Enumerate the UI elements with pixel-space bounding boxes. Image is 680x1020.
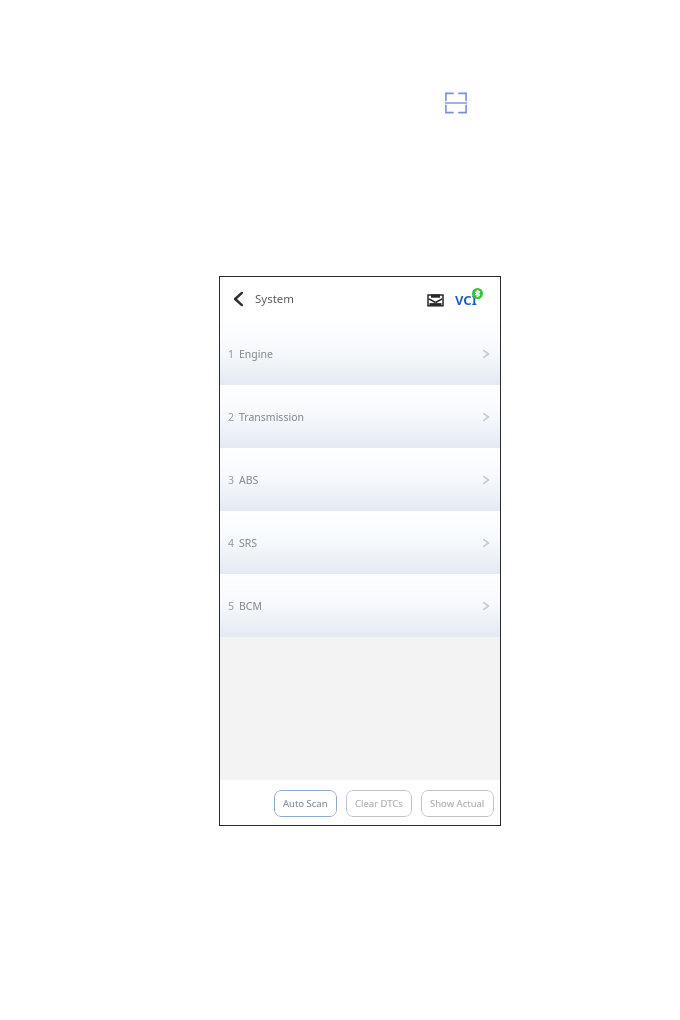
staticText: 1 [223,347,239,361]
staticText: 2 [223,410,239,424]
staticText: Auto Scan [283,797,328,810]
staticText: 5 [223,599,239,613]
button[interactable]: 1 [219,322,501,385]
staticText: Show Actual [430,797,485,810]
staticText: 3 [223,473,239,487]
button[interactable]: 2 [219,385,501,448]
staticText: Engine [239,347,273,361]
button[interactable]: 4 [219,511,501,574]
button[interactable]: 5 [219,574,501,637]
button[interactable]: VCI connection [455,286,489,312]
staticText: Clear DTCs [355,797,403,810]
button[interactable]: 3 [219,448,501,511]
button[interactable]: Back [223,283,255,315]
staticText: ABS [239,473,259,487]
button[interactable]: Clear DTCs [346,790,412,817]
button[interactable]: Show Actual [421,790,494,817]
button[interactable]: Messages [422,286,448,312]
staticText: Transmission [239,410,304,424]
button[interactable]: Scan [444,91,468,115]
staticText: VCI [455,291,477,309]
button[interactable]: Auto Scan [274,790,337,817]
staticText: SRS [239,536,258,550]
staticText: 4 [223,536,239,550]
staticText: System [255,291,295,307]
staticText: BCM [239,599,262,613]
